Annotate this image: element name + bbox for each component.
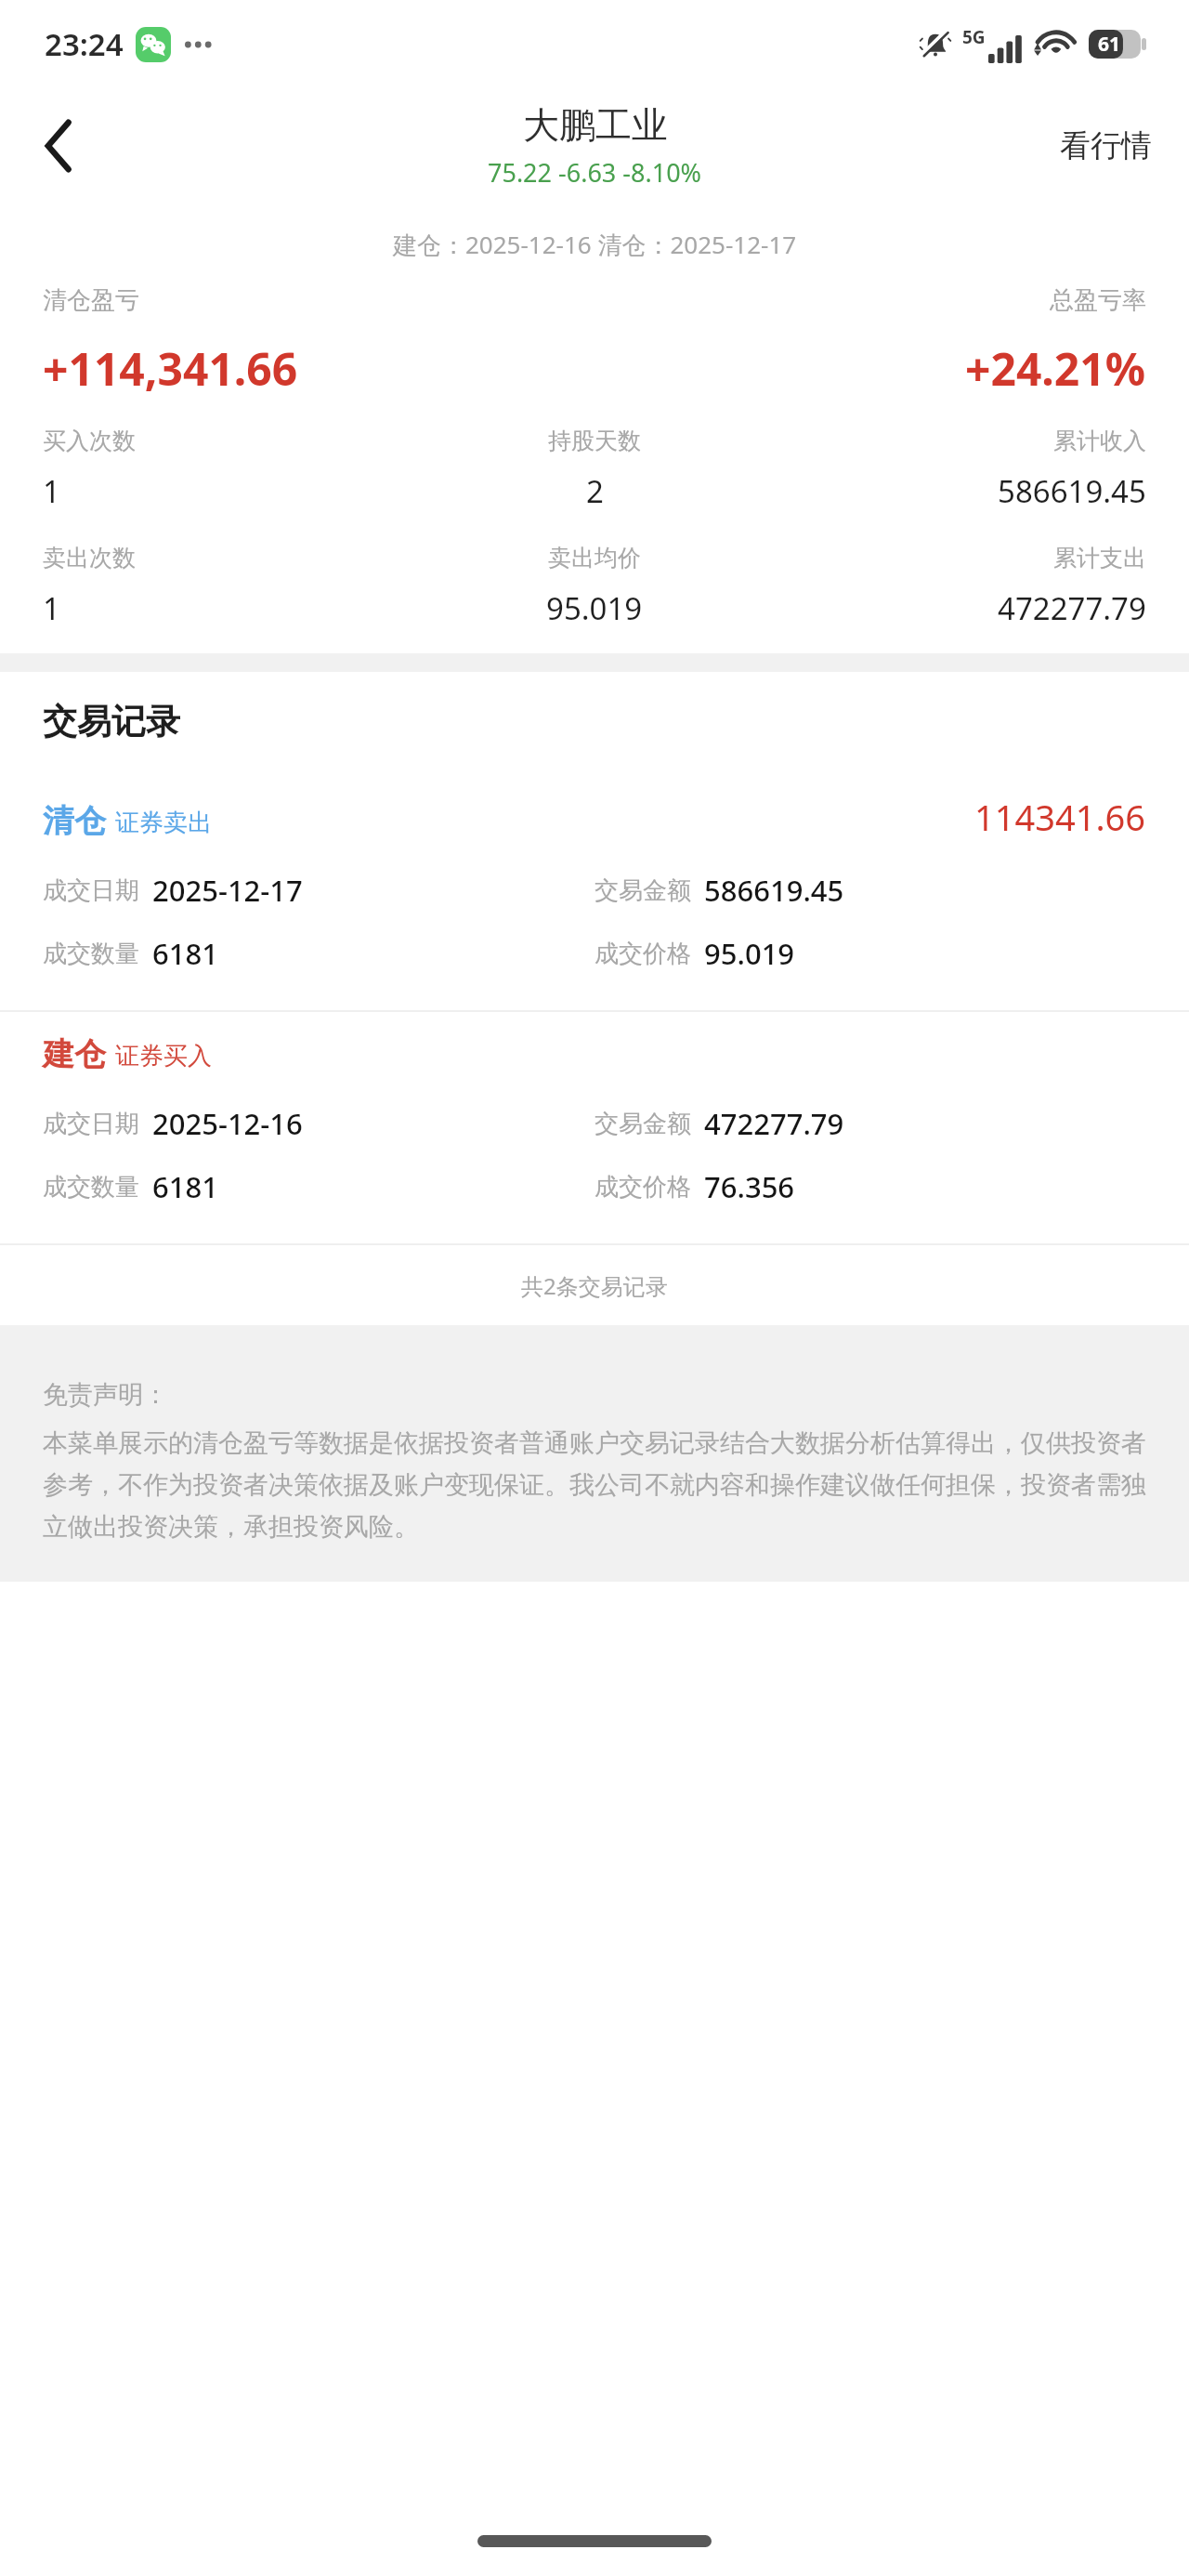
staticText: 交易记录 <box>43 700 180 743</box>
staticText: 清仓盈亏 <box>43 285 139 316</box>
staticText: 61 <box>1098 31 1121 58</box>
staticText: 建仓：2025-12-16 清仓：2025-12-17 <box>393 228 797 261</box>
staticText: 卖出均价 <box>548 544 641 572</box>
staticText: +24.21% <box>965 338 1146 399</box>
staticText: 1 <box>43 587 60 629</box>
staticText: 2 <box>586 470 604 512</box>
staticText: 95.019 <box>546 587 643 629</box>
staticText: 免责声明： <box>43 1379 168 1411</box>
staticText: 成交价格 <box>594 939 691 969</box>
staticText: 2025-12-17 <box>152 871 303 910</box>
staticText: 买入次数 <box>43 427 136 455</box>
staticText: 建仓 <box>43 1034 106 1074</box>
staticText: 成交价格 <box>594 1172 691 1203</box>
staticText: 持股天数 <box>548 427 641 455</box>
staticText: 累计支出 <box>1053 544 1146 572</box>
staticText: 472277.79 <box>704 1104 844 1143</box>
staticText: 成交日期 <box>43 1109 139 1139</box>
staticText: +114,341.66 <box>43 338 298 399</box>
staticText: 看行情 <box>1060 126 1152 165</box>
staticText: 114341.66 <box>974 793 1146 841</box>
staticText: 成交日期 <box>43 875 139 906</box>
staticText: 1 <box>43 470 60 512</box>
staticText: 76.356 <box>704 1167 795 1206</box>
staticText: 总盈亏率 <box>1050 285 1146 316</box>
staticText: 本菜单展示的清仓盈亏等数据是依据投资者普通账户交易记录结合大数据分析估算得出，仅… <box>43 1427 1152 1543</box>
staticText: 95.019 <box>704 934 795 973</box>
button[interactable]: Back <box>19 105 100 187</box>
staticText: 5G <box>962 25 986 49</box>
button[interactable]: 建仓 <box>0 1012 1189 1243</box>
staticText: 75.22 -6.63 -8.10% <box>488 155 702 190</box>
staticText: 472277.79 <box>998 587 1146 629</box>
staticText: 成交数量 <box>43 939 139 969</box>
staticText: 清仓 <box>43 801 106 841</box>
staticText: 交易金额 <box>594 875 691 906</box>
staticText: 证券卖出 <box>115 808 212 838</box>
staticText: 证券买入 <box>115 1041 212 1071</box>
staticText: 共2条交易记录 <box>521 1270 668 1301</box>
staticText: 2025-12-16 <box>152 1104 303 1143</box>
staticText: 成交数量 <box>43 1172 139 1203</box>
staticText: 6181 <box>152 1167 218 1206</box>
staticText: 大鹏工业 <box>523 102 668 148</box>
staticText: 交易金额 <box>594 1109 691 1139</box>
button[interactable]: 看行情 <box>1045 112 1167 180</box>
staticText: 累计收入 <box>1053 427 1146 455</box>
staticText: 23:24 <box>45 23 124 65</box>
staticText: 586619.45 <box>998 470 1146 512</box>
button[interactable]: 清仓 <box>0 770 1189 1010</box>
staticText: 6181 <box>152 934 218 973</box>
staticText: 586619.45 <box>704 871 844 910</box>
staticText: 卖出次数 <box>43 544 136 572</box>
